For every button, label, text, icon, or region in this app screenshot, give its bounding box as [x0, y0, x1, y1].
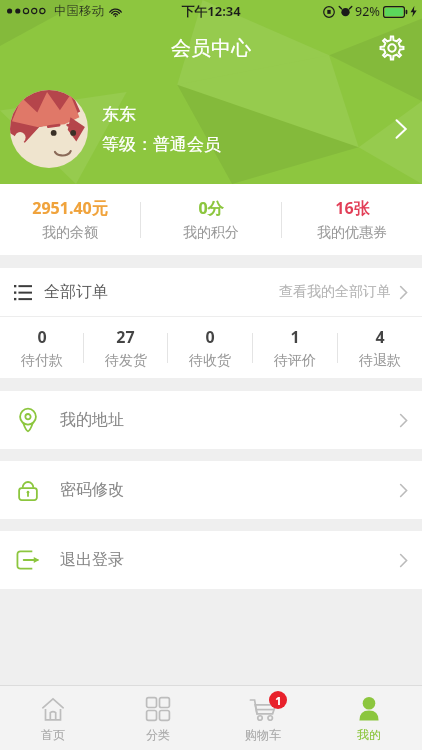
button[interactable]: 1 [253, 317, 337, 378]
button[interactable]: 我的地址 [0, 391, 422, 449]
button[interactable]: 0 [0, 317, 83, 378]
staticText: 待付款 [21, 352, 63, 370]
button[interactable]: 4 [338, 317, 422, 378]
button[interactable]: 我的 [316, 686, 422, 750]
button[interactable]: 首页 [0, 686, 105, 750]
button[interactable]: Settings [370, 26, 414, 70]
staticText: 购物车 [245, 727, 281, 742]
staticText: 0 [205, 326, 215, 348]
staticText: 等级：普通会员 [102, 134, 221, 155]
staticText: 16张 [335, 197, 370, 219]
staticText: 1 [290, 326, 300, 348]
staticText: 27 [116, 326, 135, 348]
staticText: 下午12:34 [181, 2, 241, 20]
button[interactable]: 0分 [141, 184, 281, 255]
staticText: 全部订单 [44, 282, 108, 302]
button[interactable]: 分类 [105, 686, 210, 750]
staticText: 1 [275, 693, 282, 708]
staticText: 分类 [146, 727, 170, 742]
button[interactable]: 0 [168, 317, 252, 378]
staticText: 待收货 [189, 352, 231, 370]
staticText: 待发货 [105, 352, 147, 370]
staticText: 我的积分 [183, 224, 239, 242]
staticText: 我的 [357, 727, 381, 742]
staticText: 2951.40元 [32, 197, 108, 219]
button[interactable]: 退出登录 [0, 531, 422, 589]
staticText: 待退款 [359, 352, 401, 370]
staticText: 92% [355, 3, 380, 20]
staticText: 待评价 [274, 352, 316, 370]
staticText: 0分 [198, 197, 224, 219]
staticText: 查看我的全部订单 [279, 283, 391, 301]
staticText: 首页 [41, 727, 65, 742]
button[interactable]: 16张 [282, 184, 422, 255]
staticText: 密码修改 [60, 480, 124, 500]
button[interactable]: 2951.40元 [0, 184, 140, 255]
staticText: 东东 [102, 104, 136, 125]
button[interactable]: 全部订单 [0, 268, 422, 316]
staticText: 我的地址 [60, 410, 124, 430]
staticText: 4 [375, 326, 385, 348]
staticText: 0 [37, 326, 47, 348]
staticText: 会员中心 [171, 36, 251, 61]
staticText: 退出登录 [60, 550, 124, 570]
button[interactable]: 1 [210, 686, 316, 750]
staticText: 中国移动 [54, 3, 104, 19]
button[interactable]: 27 [84, 317, 167, 378]
staticText: 我的余额 [42, 224, 98, 242]
staticText: 我的优惠券 [317, 224, 387, 242]
button[interactable]: 东东 [0, 74, 422, 184]
button[interactable]: 密码修改 [0, 461, 422, 519]
